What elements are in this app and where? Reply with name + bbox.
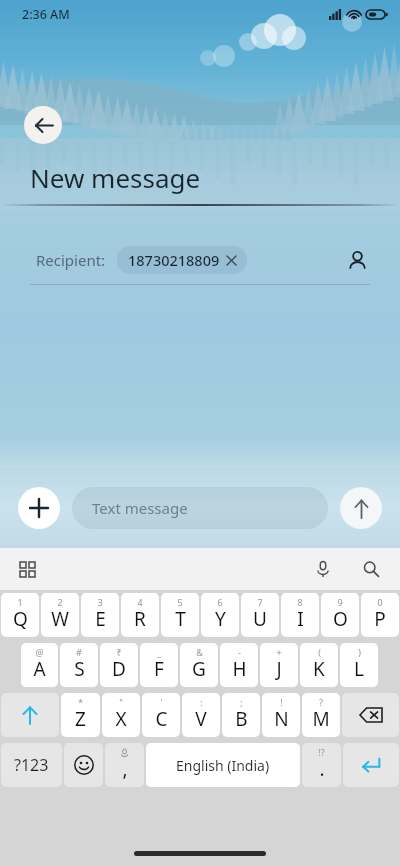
button[interactable]: ; xyxy=(222,693,260,737)
button[interactable]: + xyxy=(260,643,298,687)
button[interactable]: 0 xyxy=(361,593,399,637)
staticText: ( xyxy=(318,646,321,658)
button[interactable]: 2 xyxy=(41,593,79,637)
button[interactable]: 1 xyxy=(1,593,39,637)
button[interactable]: # xyxy=(60,643,98,687)
button[interactable]: Voice input xyxy=(308,554,338,584)
staticText: M xyxy=(312,706,330,732)
button[interactable]: ( xyxy=(300,643,338,687)
button[interactable]: & xyxy=(180,643,218,687)
staticText: S xyxy=(74,656,85,682)
staticText: 3 xyxy=(97,596,103,608)
button[interactable]: 5 xyxy=(161,593,199,637)
staticText: 2 xyxy=(57,596,63,608)
staticText: Text message xyxy=(92,498,188,518)
staticText: X xyxy=(115,706,127,732)
staticText: Recipient: xyxy=(36,250,106,270)
button[interactable]: Enter xyxy=(343,743,399,787)
staticText: 1 xyxy=(17,596,23,608)
staticText: J xyxy=(276,656,282,682)
button[interactable]: : xyxy=(182,693,220,737)
button[interactable]: 4 xyxy=(121,593,159,637)
staticText: F xyxy=(154,656,164,682)
staticText: H xyxy=(232,656,247,682)
button[interactable]: Send xyxy=(340,487,382,529)
staticText: 5 xyxy=(177,596,183,608)
staticText: O xyxy=(333,606,348,632)
button[interactable]: - xyxy=(220,643,258,687)
button[interactable]: ? xyxy=(302,693,340,737)
button[interactable]: @ xyxy=(21,643,58,687)
staticText: - xyxy=(238,646,241,658)
button[interactable]: Add attachment xyxy=(18,487,60,529)
staticText: Z xyxy=(75,706,86,732)
button[interactable]: 9 xyxy=(321,593,359,637)
staticText: & xyxy=(196,646,203,658)
staticText: 18730218809 xyxy=(128,250,220,270)
staticText: ! xyxy=(280,696,283,708)
staticText: N xyxy=(274,706,289,732)
staticText: ; xyxy=(240,696,243,708)
staticText: " xyxy=(119,696,123,708)
button[interactable]: Search xyxy=(356,554,386,584)
staticText: + xyxy=(276,646,282,658)
button[interactable]: _ xyxy=(140,643,178,687)
button[interactable]: ! xyxy=(262,693,300,737)
staticText: W xyxy=(51,606,69,632)
button[interactable]: Keyboard menu xyxy=(12,554,42,584)
staticText: , xyxy=(122,756,128,782)
staticText: ₹ xyxy=(116,646,122,658)
button[interactable]: Symbols xyxy=(1,743,62,787)
staticText: ' xyxy=(160,696,163,708)
staticText: English (India) xyxy=(176,756,270,775)
staticText: 9 xyxy=(337,596,343,608)
button[interactable]: ) xyxy=(340,643,378,687)
button[interactable]: * xyxy=(61,693,100,737)
button[interactable]: ' xyxy=(142,693,180,737)
staticText: _ xyxy=(157,646,161,658)
button[interactable]: 8 xyxy=(281,593,319,637)
staticText: G xyxy=(192,656,206,682)
button[interactable]: " xyxy=(102,693,140,737)
staticText: D xyxy=(112,656,126,682)
button[interactable]: !? xyxy=(302,743,341,787)
staticText: T xyxy=(175,606,186,632)
staticText: C xyxy=(155,706,168,732)
staticText: K xyxy=(313,656,325,682)
button[interactable]: 18730218809 xyxy=(117,246,247,274)
staticText: V xyxy=(195,706,207,732)
button[interactable]: 7 xyxy=(241,593,279,637)
staticText: L xyxy=(354,656,364,682)
staticText: : xyxy=(200,696,203,708)
button[interactable]: Emoji xyxy=(64,743,103,787)
button[interactable]: Text message xyxy=(72,487,328,529)
staticText: R xyxy=(134,606,146,632)
staticText: ?123 xyxy=(14,754,49,776)
staticText: * xyxy=(78,696,83,708)
staticText: New message xyxy=(30,160,201,195)
button[interactable]: , xyxy=(105,743,144,787)
staticText: . xyxy=(319,756,325,782)
button[interactable]: ₹ xyxy=(100,643,138,687)
button[interactable]: Space xyxy=(146,743,300,787)
staticText: !? xyxy=(318,746,325,758)
staticText: 4 xyxy=(137,596,143,608)
button[interactable]: Add contact xyxy=(340,243,374,277)
staticText: A xyxy=(33,656,46,682)
staticText: I xyxy=(297,606,304,632)
button[interactable]: 6 xyxy=(201,593,239,637)
staticText: 2:36 AM xyxy=(22,6,70,23)
staticText: ) xyxy=(358,646,361,658)
staticText: P xyxy=(374,606,386,632)
button[interactable]: Back xyxy=(24,106,62,144)
staticText: Q xyxy=(13,606,28,632)
button[interactable]: 3 xyxy=(81,593,119,637)
button[interactable]: Backspace xyxy=(342,693,399,737)
staticText: 8 xyxy=(297,596,303,608)
staticText: ? xyxy=(319,696,323,708)
button[interactable]: Shift xyxy=(1,693,59,737)
staticText: Y xyxy=(215,606,226,632)
staticText: 7 xyxy=(257,596,263,608)
staticText: @ xyxy=(35,646,44,658)
staticText: U xyxy=(253,606,267,632)
